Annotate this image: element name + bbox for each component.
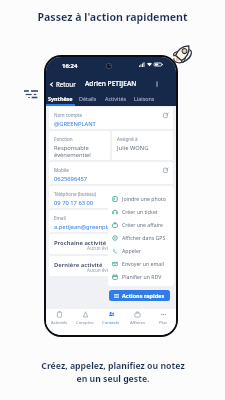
button[interactable]: More options (152, 79, 161, 88)
staticText: Retour (56, 80, 76, 88)
staticText: Liaisons (134, 95, 155, 102)
button[interactable]: Nom compte (49, 107, 173, 129)
staticText: Détails (79, 95, 97, 102)
staticText: Actions rapides (122, 292, 165, 299)
staticText: Email (54, 215, 66, 221)
button[interactable]: Activités (102, 91, 130, 106)
button[interactable]: Envoyer un email (108, 257, 174, 270)
button[interactable]: Liaisons (130, 91, 158, 106)
staticText: Affaires (130, 320, 145, 326)
staticText: Créez, appelez, planifiez ou notez (41, 360, 185, 372)
staticText: Activités (51, 320, 68, 326)
staticText: Téléphone (bureau) (54, 191, 96, 197)
staticText: Nom compte (54, 112, 83, 118)
button[interactable]: Prochaine activité (49, 234, 173, 254)
button[interactable]: Email (49, 210, 173, 232)
staticText: Fonction (54, 136, 73, 142)
staticText: Mobile (54, 167, 69, 173)
staticText: Passez à l'action rapidement (0, 10, 225, 24)
button[interactable]: Assigné à (112, 131, 173, 160)
button[interactable]: Affaires (124, 309, 150, 335)
button[interactable]: Téléphone (bureau) (49, 186, 173, 208)
button[interactable]: Créer un ticket (108, 205, 174, 218)
staticText: Activités (105, 95, 127, 102)
staticText: 0625696457 (54, 175, 88, 183)
button[interactable]: Activités (46, 309, 72, 335)
staticText: Responsable événementiel (54, 144, 91, 159)
button[interactable]: Retour (46, 80, 80, 88)
staticText: Planifier un RDV (122, 273, 162, 280)
staticText: Aucun évènement (87, 245, 127, 251)
staticText: Créer une affaire (122, 221, 164, 228)
button[interactable]: Planifier un RDV (108, 270, 174, 283)
button[interactable]: Synthèse (46, 91, 74, 106)
staticText: Créer un ticket (122, 208, 158, 215)
button[interactable]: Plus (150, 309, 176, 335)
button[interactable]: Mobile (49, 162, 173, 184)
staticText: Comptes (76, 320, 94, 326)
button[interactable]: Fonction (49, 131, 110, 160)
staticText: Synthèse (48, 95, 73, 102)
staticText: @GREENPLANT (54, 120, 96, 128)
button[interactable]: Actions rapides (109, 290, 170, 301)
staticText: Joindre une photo (122, 195, 166, 202)
staticText: Adrien PETIJEAN (85, 79, 137, 88)
staticText: en un seul geste. (76, 373, 150, 385)
staticText: Appeler (122, 247, 142, 254)
staticText: Assigné à (117, 136, 138, 142)
button[interactable]: Joindre une photo (108, 192, 174, 205)
staticText: Aucun évènement (87, 267, 127, 273)
staticText: Dernière activité (54, 261, 103, 269)
staticText: Plus (159, 320, 168, 326)
staticText: 16:24 (62, 62, 78, 70)
button[interactable]: Appeler (108, 244, 174, 257)
button[interactable]: Afficher dans GPS (108, 231, 174, 244)
button[interactable]: Créer une affaire (108, 218, 174, 231)
staticText: Afficher dans GPS (122, 234, 166, 241)
button[interactable]: Comptes (72, 309, 98, 335)
staticText: a.petijean@greenpla (54, 223, 111, 231)
staticText: Prochaine activité (54, 239, 107, 247)
button[interactable]: Détails (74, 91, 102, 106)
staticText: 09 70 17 63 00 (54, 199, 94, 207)
staticText: Julie WONG (117, 144, 149, 152)
button[interactable]: Contacts (98, 309, 124, 335)
button[interactable]: Dernière activité (49, 256, 173, 276)
staticText: Contacts (102, 320, 120, 326)
staticText: Envoyer un email (122, 260, 164, 267)
